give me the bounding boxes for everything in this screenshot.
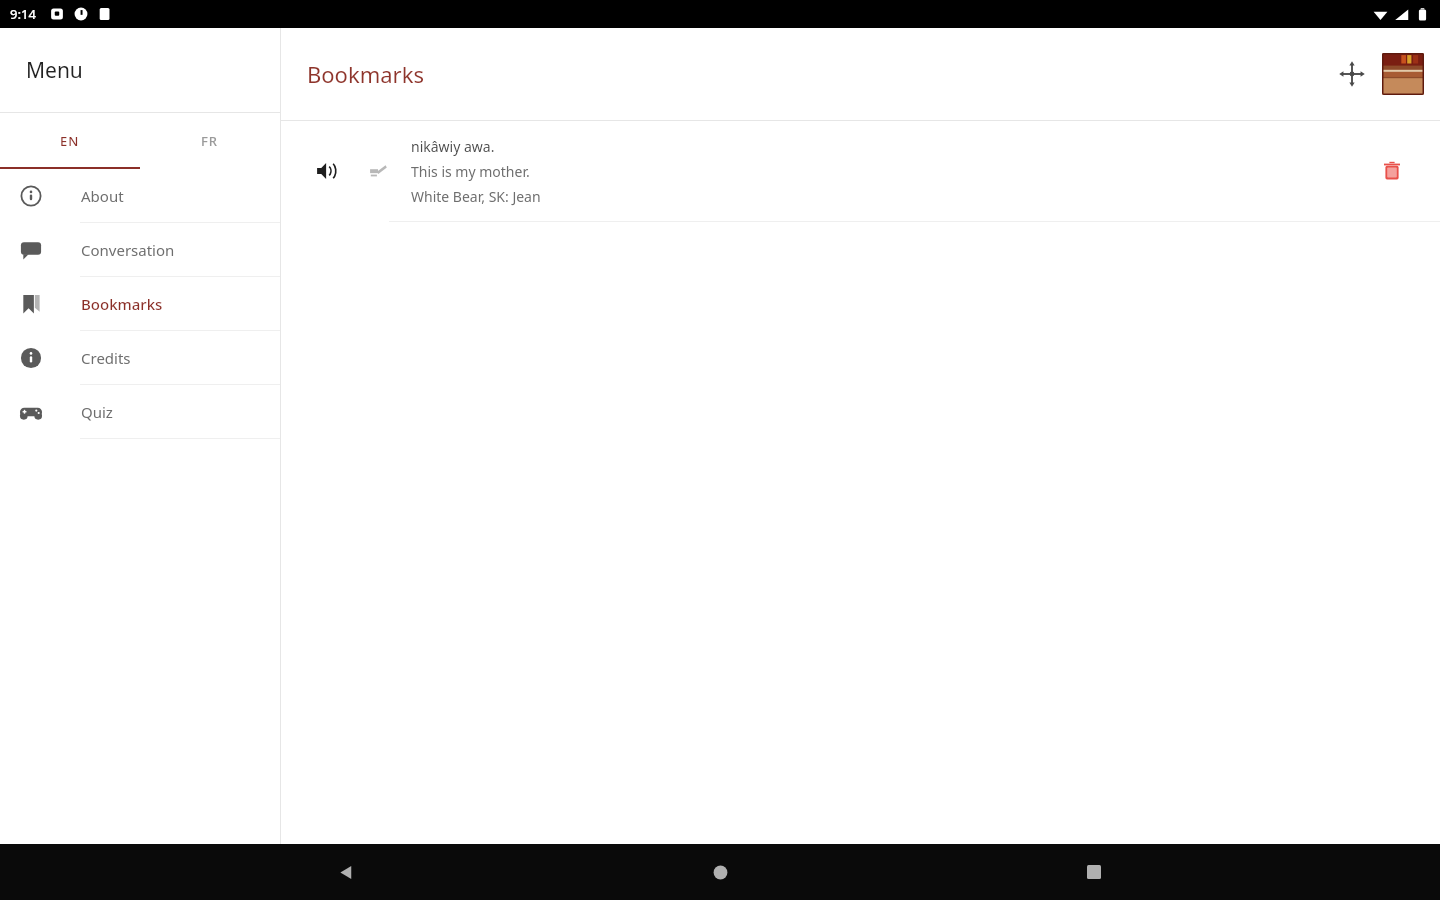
button[interactable]: Quiz [0, 385, 280, 438]
button[interactable]: About [0, 169, 280, 222]
staticText: White Bear, SK: Jean [411, 187, 541, 206]
staticText: Bookmarks [307, 59, 424, 89]
button[interactable]: Profile image [1382, 53, 1424, 95]
button[interactable]: Recent apps [1066, 844, 1122, 900]
button[interactable]: Bookmarks [0, 277, 280, 330]
staticText: Credits [81, 348, 131, 368]
button[interactable]: Conversation [0, 223, 280, 276]
button[interactable]: EN [0, 113, 140, 169]
button[interactable]: FR [140, 113, 280, 169]
staticText: 9:14 [10, 5, 36, 23]
staticText: Bookmarks [81, 294, 163, 314]
staticText: About [81, 186, 124, 206]
button[interactable]: Play audio [313, 157, 341, 185]
staticText: This is my mother. [411, 162, 530, 181]
button[interactable]: Home [692, 844, 748, 900]
button[interactable]: Play audio [281, 121, 1440, 221]
staticText: EN [60, 132, 80, 150]
staticText: Menu [26, 56, 83, 85]
staticText: FR [201, 132, 219, 150]
button[interactable]: Delete bookmark [1368, 147, 1416, 195]
button[interactable]: Credits [0, 331, 280, 384]
staticText: Quiz [81, 402, 113, 422]
staticText: Conversation [81, 240, 175, 260]
button[interactable]: Back [318, 844, 374, 900]
button[interactable]: Move [1330, 52, 1374, 96]
staticText: nikâwiy awa. [411, 137, 495, 156]
